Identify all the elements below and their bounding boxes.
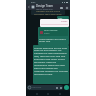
button[interactable]: Message: [27, 85, 63, 90]
button[interactable]: Friday: [40, 19, 69, 27]
button[interactable]: Messages are end-to-end encrypted. Tap t…: [31, 10, 65, 15]
button[interactable]: Video call: [59, 5, 64, 10]
button[interactable]: Send voice message: [64, 85, 69, 90]
button[interactable]: Call: [64, 5, 69, 10]
button[interactable]: Sarah Mitchell: [38, 27, 69, 45]
staticText: Design Team: [36, 4, 53, 8]
staticText: tap for group info: [36, 8, 53, 10]
staticText: Photo: [44, 32, 50, 35]
staticText: Friday: [61, 20, 68, 23]
staticText: Hey team: [58, 16, 68, 19]
staticText: Thanks everyone for the hard work on thi…: [34, 46, 68, 76]
button[interactable]: Thanks everyone for the hard work on thi…: [33, 45, 69, 84]
button[interactable]: Back: [27, 5, 31, 9]
staticText: Sarah Mitchell: [44, 29, 58, 32]
staticText: Looks great! Let's ship it today and: [39, 37, 68, 43]
staticText: Messages are end-to-end encrypted. Tap t…: [31, 10, 65, 15]
staticText: 9:41: [31, 1, 36, 4]
staticText: Message: [32, 86, 42, 89]
button[interactable]: Hey team: [57, 16, 69, 19]
